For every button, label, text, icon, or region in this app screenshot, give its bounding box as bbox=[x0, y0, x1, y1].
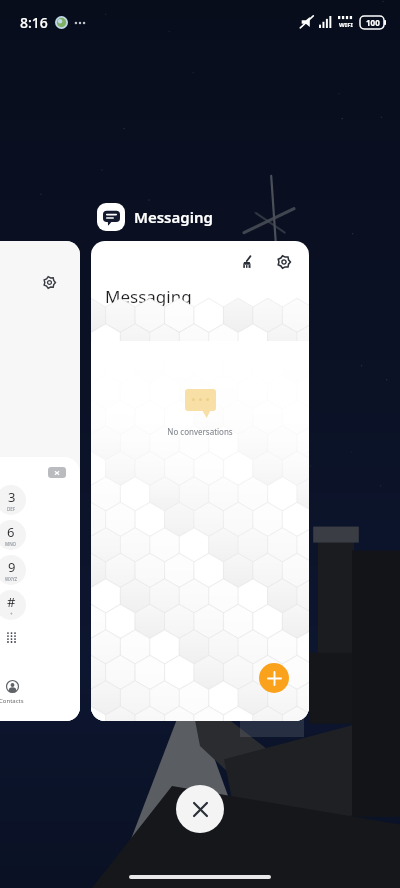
staticText: Messaging bbox=[105, 285, 192, 308]
button[interactable]: Dialer settings bbox=[38, 271, 60, 293]
staticText: MNO bbox=[5, 541, 17, 547]
button[interactable]: Backspace bbox=[48, 467, 66, 478]
button[interactable]: Messaging bbox=[97, 203, 213, 231]
staticText: WXYZ bbox=[5, 576, 18, 582]
button[interactable]: # bbox=[0, 590, 26, 620]
button[interactable]: Keypad bbox=[2, 628, 20, 646]
button[interactable]: 6 bbox=[0, 520, 26, 550]
staticText: 100 bbox=[366, 17, 380, 28]
staticText: Contacts bbox=[0, 697, 24, 705]
staticText: 9 bbox=[8, 558, 16, 576]
button[interactable]: Clean up bbox=[235, 249, 261, 275]
staticText: + bbox=[10, 611, 13, 617]
button[interactable]: Clear all recent apps bbox=[176, 785, 224, 833]
button[interactable]: 9 bbox=[0, 555, 26, 585]
staticText: DEF bbox=[7, 506, 16, 512]
staticText: 8:16 bbox=[20, 13, 48, 32]
button[interactable]: Dialer settings bbox=[0, 241, 80, 721]
button[interactable]: Clean up bbox=[91, 241, 309, 721]
staticText: WIFI bbox=[339, 21, 353, 29]
button[interactable]: Contacts bbox=[4, 678, 20, 694]
button[interactable]: Settings bbox=[271, 249, 297, 275]
staticText: 3 bbox=[8, 488, 16, 506]
button[interactable]: Search messages bbox=[103, 317, 297, 341]
button[interactable]: 3 bbox=[0, 485, 26, 515]
staticText: No conversations bbox=[167, 426, 233, 437]
staticText: Search messages bbox=[127, 323, 196, 335]
staticText: Messaging bbox=[134, 207, 213, 227]
staticText: 6 bbox=[7, 523, 15, 541]
staticText: # bbox=[7, 593, 16, 611]
button[interactable]: New conversation bbox=[259, 663, 289, 693]
